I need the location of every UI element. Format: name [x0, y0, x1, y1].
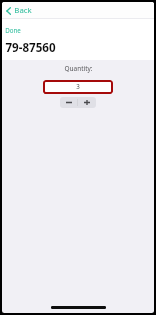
button[interactable]: 3 [43, 80, 113, 94]
staticText: Back [14, 5, 32, 16]
staticText: 79-87560 [5, 40, 56, 56]
button[interactable]: Back [5, 4, 33, 17]
button[interactable]: Decrease quantity [60, 97, 77, 108]
staticText: 3 [76, 82, 80, 90]
button[interactable]: Done [3, 24, 23, 36]
staticText: Quantity: [64, 64, 93, 73]
button[interactable]: Increase quantity [78, 97, 96, 108]
staticText: Done [5, 26, 21, 34]
